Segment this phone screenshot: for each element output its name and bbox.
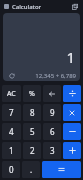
button[interactable]: 7 [2, 104, 21, 121]
staticText: 1 [9, 145, 14, 156]
button[interactable]: 6 [43, 123, 61, 140]
staticText: % [29, 89, 35, 99]
staticText: . [30, 164, 33, 175]
button[interactable]: Expand [70, 2, 79, 11]
staticText: 5 [30, 126, 35, 137]
button[interactable]: % [23, 85, 41, 102]
staticText: 12,345 + 6,789 [35, 72, 76, 80]
staticText: 9 [50, 107, 55, 118]
staticText: 0 [9, 164, 14, 175]
button[interactable]: . [22, 161, 40, 178]
button[interactable]: 4 [2, 123, 21, 140]
staticText: 1 [66, 47, 75, 67]
staticText: AC [7, 89, 16, 99]
button[interactable]: 8 [23, 104, 41, 121]
staticText: 7 [9, 107, 14, 118]
button[interactable]: 1 [2, 142, 21, 159]
staticText: 6 [50, 126, 55, 137]
button[interactable]: 9 [43, 104, 61, 121]
button[interactable]: Plus [63, 142, 81, 159]
button[interactable]: 0 [2, 161, 20, 178]
button[interactable]: Divide [63, 85, 81, 102]
staticText: Calculator [12, 3, 42, 11]
button[interactable]: Backspace [43, 85, 61, 102]
button[interactable]: Equals [42, 161, 81, 178]
button[interactable]: Multiply [63, 104, 81, 121]
button[interactable]: Minus [63, 123, 81, 140]
button[interactable]: 2 [23, 142, 41, 159]
staticText: 3 [50, 145, 55, 156]
staticText: 8 [30, 107, 35, 118]
button[interactable]: 5 [23, 123, 41, 140]
button[interactable]: 3 [43, 142, 61, 159]
staticText: 2 [30, 145, 35, 156]
button[interactable]: History [7, 71, 16, 80]
staticText: 4 [9, 126, 14, 137]
button[interactable]: AC [2, 85, 21, 102]
